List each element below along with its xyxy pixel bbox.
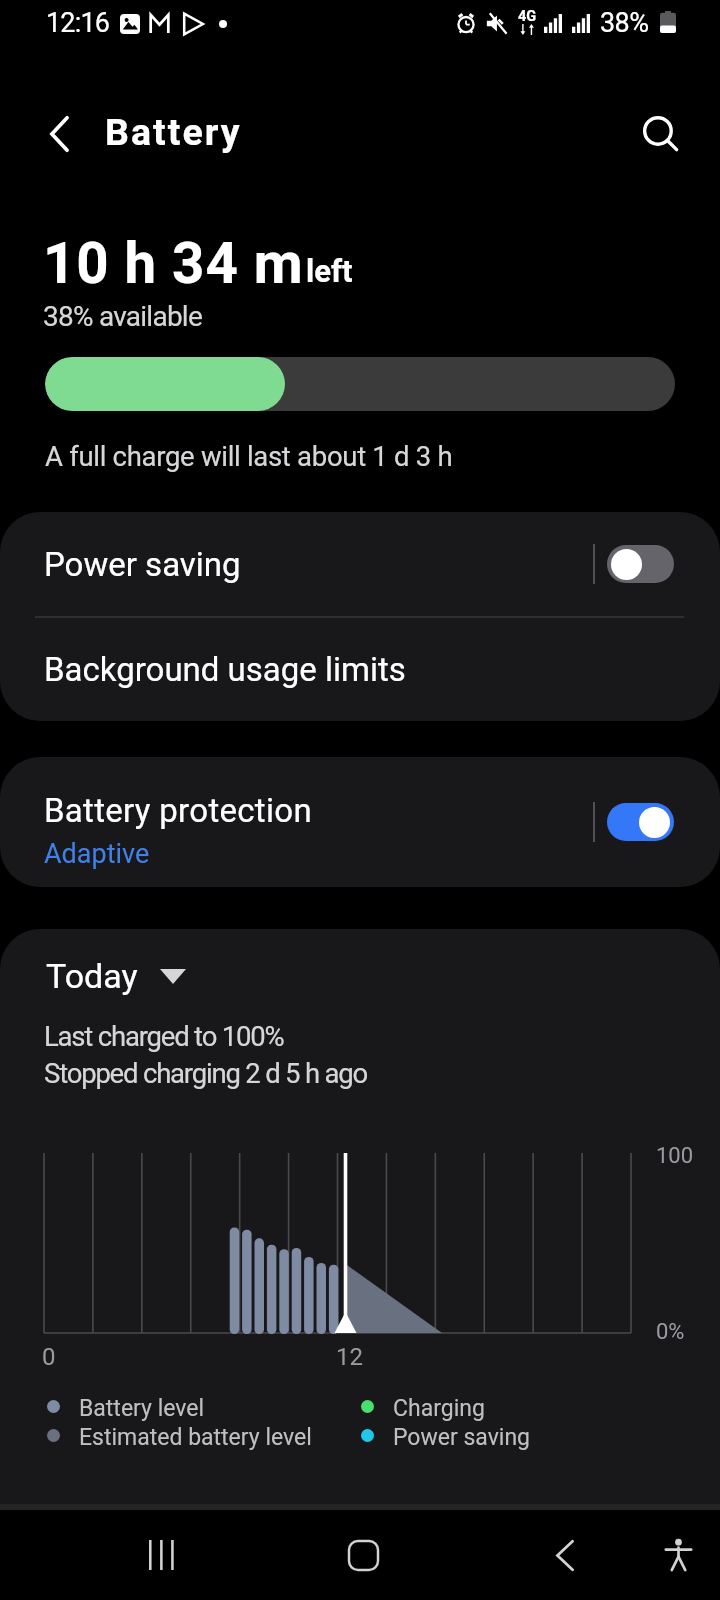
staticText: Last charged to 100% (44, 1020, 284, 1052)
button[interactable]: Accessibility (638, 1520, 718, 1590)
staticText: Battery (105, 110, 242, 154)
button[interactable]: Search (629, 102, 693, 166)
staticText: Power saving (393, 1424, 531, 1451)
staticText: Charging (393, 1395, 485, 1422)
staticText: 12:16 (46, 7, 110, 39)
staticText: Background usage limits (44, 650, 406, 689)
staticText: Adaptive (44, 838, 150, 870)
button[interactable]: Background usage limits (0, 618, 720, 720)
staticText: 38% (600, 7, 649, 39)
staticText: Estimated battery level (79, 1424, 312, 1451)
staticText: Battery level (79, 1395, 205, 1422)
button[interactable]: Navigate up (27, 102, 91, 166)
button[interactable]: Today (46, 956, 186, 996)
button[interactable]: Home (313, 1520, 413, 1590)
staticText: 12 (336, 1343, 363, 1371)
button[interactable]: Battery protection toggle, on (607, 803, 674, 841)
staticText: 0% (656, 1319, 685, 1345)
staticText: Battery protection (44, 791, 312, 830)
staticText: Today (46, 956, 138, 996)
button[interactable]: Battery protection (0, 757, 720, 887)
staticText: Stopped charging 2 d 5 h ago (44, 1057, 368, 1089)
button[interactable]: Power saving toggle, off (607, 545, 674, 583)
staticText: 100 (656, 1143, 694, 1169)
staticText: left (306, 253, 353, 289)
staticText: 0 (42, 1343, 56, 1371)
staticText: 38% available (43, 300, 203, 333)
button[interactable]: Power saving (0, 512, 720, 616)
staticText: 4G (518, 8, 537, 25)
staticText: 10 h 34 m (43, 231, 304, 297)
staticText: A full charge will last about 1 d 3 h (45, 440, 453, 472)
staticText: Power saving (44, 545, 241, 584)
button[interactable]: Recent apps (111, 1520, 211, 1590)
button[interactable]: Back (515, 1520, 615, 1590)
